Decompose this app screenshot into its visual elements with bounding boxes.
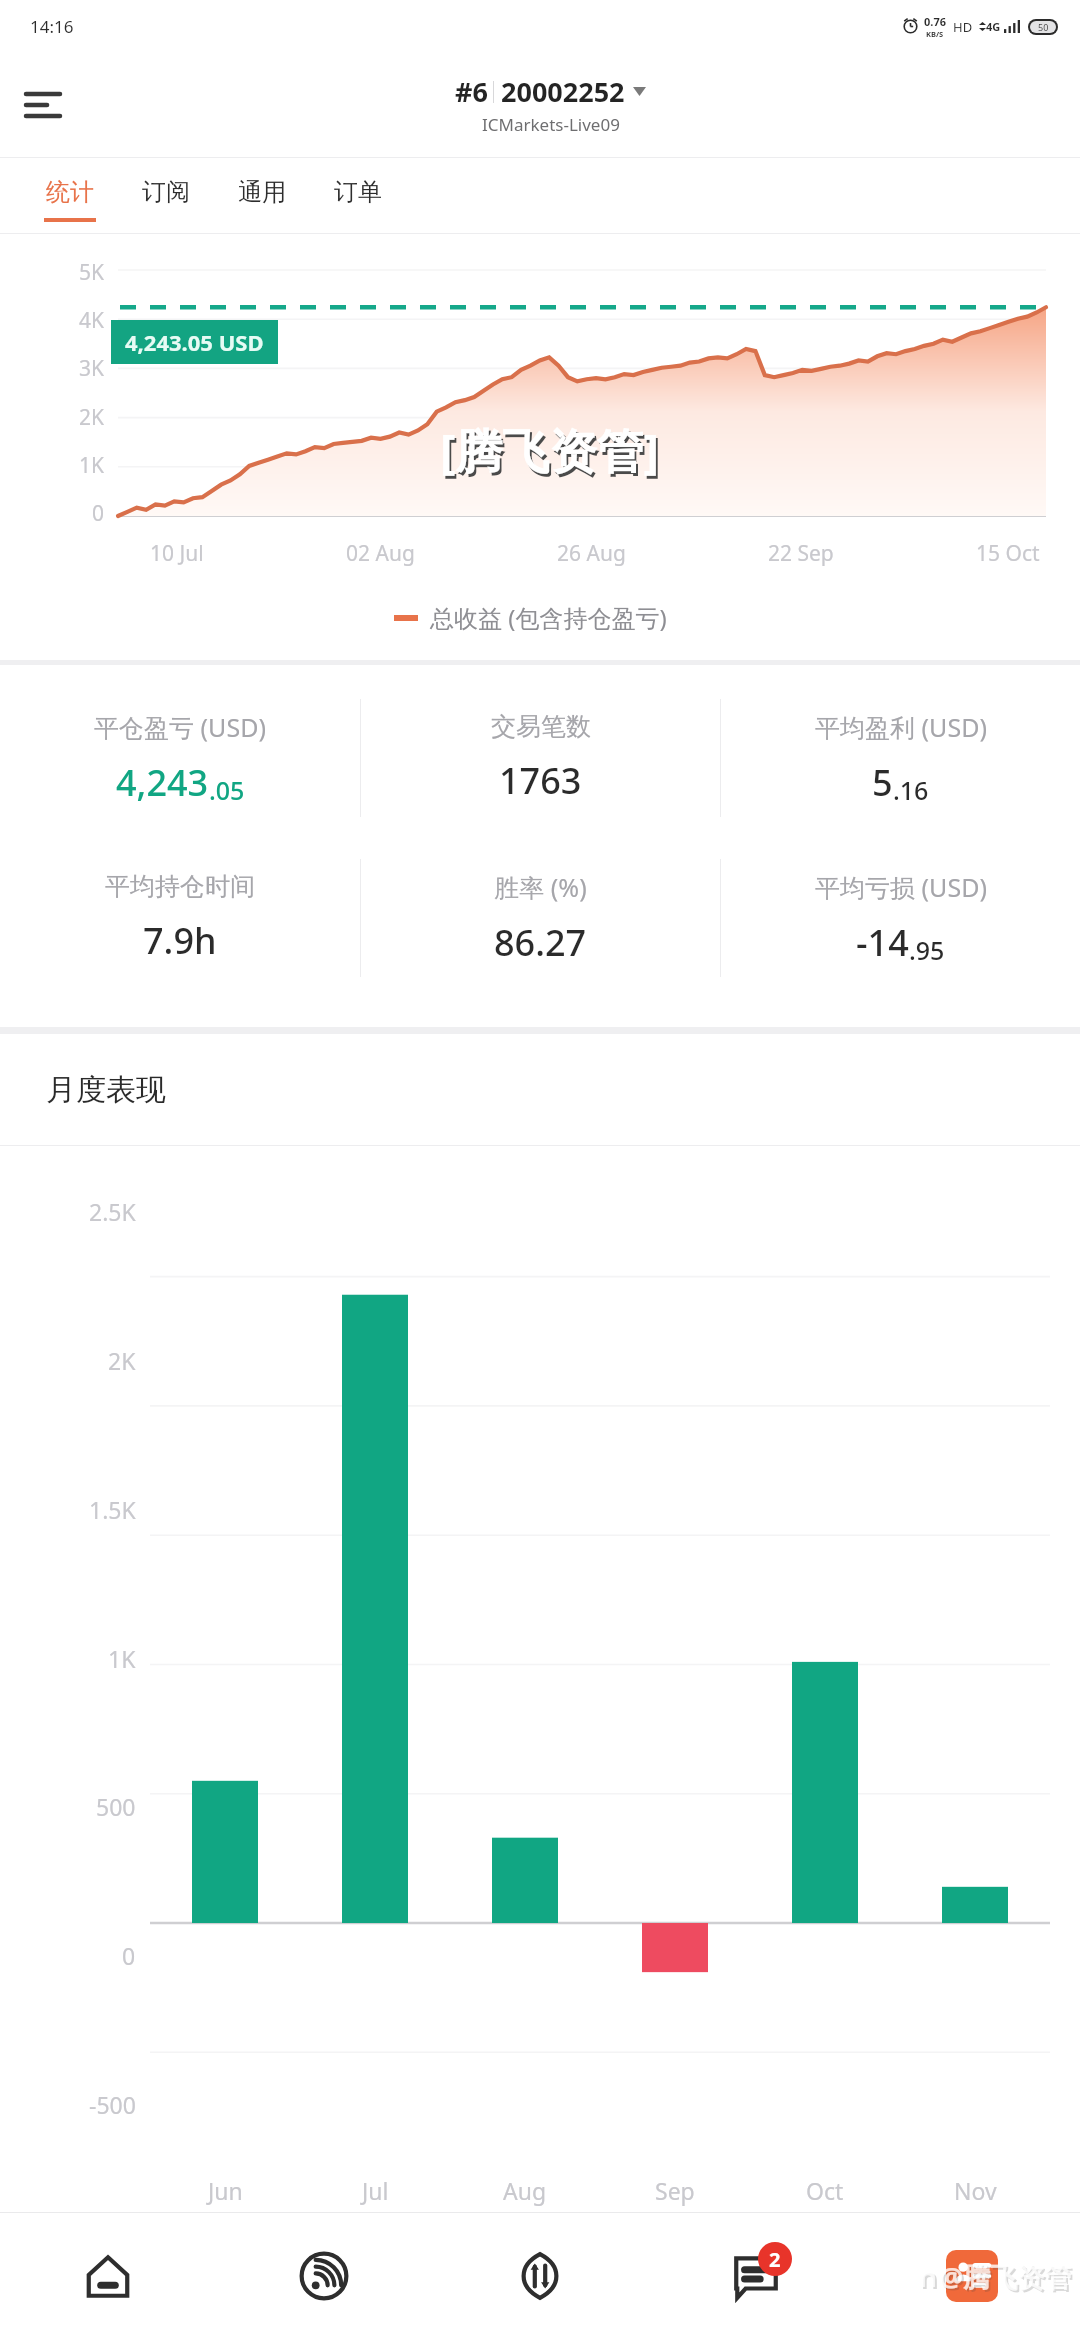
staticText: .95 — [909, 933, 945, 967]
staticText: -14 — [856, 918, 909, 967]
staticText: 5K — [79, 258, 105, 287]
staticText: 4G — [986, 19, 1001, 34]
staticText: 14:16 — [30, 15, 74, 38]
button[interactable]: News — [864, 2212, 1080, 2340]
staticText: 5 — [872, 758, 893, 807]
staticText: Jul — [362, 2175, 389, 2206]
staticText: 4,243 — [116, 758, 209, 807]
staticText: .05 — [209, 773, 245, 807]
staticText: 统计 — [46, 177, 94, 207]
staticText: 26 Aug — [557, 539, 626, 568]
staticText: HD — [953, 18, 973, 36]
staticText: 1K — [108, 1643, 136, 1674]
staticText: 1K — [79, 451, 105, 480]
button[interactable]: Menu — [12, 74, 74, 136]
staticText: 02 Aug — [346, 539, 415, 568]
button[interactable]: Signals — [216, 2212, 432, 2340]
staticText: 通用 — [238, 177, 286, 207]
staticText: 0 — [92, 499, 105, 528]
staticText: 15 Oct — [976, 539, 1040, 568]
staticText: Nov — [954, 2175, 997, 2206]
staticText: 订阅 — [142, 177, 190, 207]
staticText: 1.5K — [89, 1494, 136, 1525]
staticText: 0.76 — [924, 14, 946, 29]
staticText: 2.5K — [89, 1196, 136, 1227]
button[interactable]: Trade — [432, 2212, 648, 2340]
staticText: ICMarkets-Live09 — [482, 113, 620, 136]
staticText: 平均持仓时间 — [105, 871, 255, 902]
staticText: 0 — [122, 1940, 136, 1971]
staticText: Jun — [208, 2175, 243, 2206]
staticText: Oct — [806, 2175, 844, 2206]
staticText: 20002252 — [501, 73, 625, 110]
staticText: 86.27 — [494, 918, 587, 967]
staticText: ∩@腾飞资管 — [917, 2258, 1072, 2295]
button[interactable]: 订单 — [310, 158, 406, 233]
staticText: Aug — [503, 2175, 547, 2206]
staticText: 4K — [79, 306, 105, 335]
staticText: 22 Sep — [768, 539, 834, 568]
staticText: 订单 — [334, 177, 382, 207]
staticText: ∩@腾飞资管 — [919, 2260, 1074, 2297]
staticText: 2 — [769, 2246, 781, 2273]
staticText: 50 — [1038, 21, 1049, 33]
staticText: 2K — [108, 1345, 136, 1376]
staticText: [腾飞资管] — [442, 421, 662, 485]
button[interactable]: 统计 — [22, 158, 118, 233]
staticText: .16 — [893, 773, 929, 807]
staticText: #6 — [455, 73, 488, 110]
staticText: 月度表现 — [46, 1071, 166, 1109]
button[interactable]: 通用 — [214, 158, 310, 233]
staticText: 500 — [96, 1791, 136, 1822]
staticText: 胜率 (%) — [494, 870, 587, 904]
staticText: [腾飞资管] — [440, 418, 660, 482]
staticText: -500 — [89, 2089, 136, 2120]
staticText: 7.9h — [143, 916, 217, 965]
staticText: KB/S — [926, 29, 944, 39]
staticText: 平均盈利 (USD) — [815, 710, 987, 744]
staticText: 平均亏损 (USD) — [815, 870, 987, 904]
staticText: 平仓盈亏 (USD) — [94, 710, 266, 744]
button[interactable]: Messages — [648, 2212, 864, 2340]
staticText: 2K — [79, 403, 105, 432]
staticText: 10 Jul — [150, 539, 204, 568]
staticText: 4,243.05 USD — [125, 327, 264, 357]
staticText: Sep — [655, 2175, 695, 2206]
button[interactable]: Home — [0, 2212, 216, 2340]
button[interactable]: 订阅 — [118, 158, 214, 233]
staticText: 交易笔数 — [491, 711, 591, 742]
staticText: 3K — [79, 354, 105, 383]
staticText: 总收益 (包含持仓盈亏) — [430, 601, 667, 634]
staticText: 1763 — [499, 756, 582, 805]
